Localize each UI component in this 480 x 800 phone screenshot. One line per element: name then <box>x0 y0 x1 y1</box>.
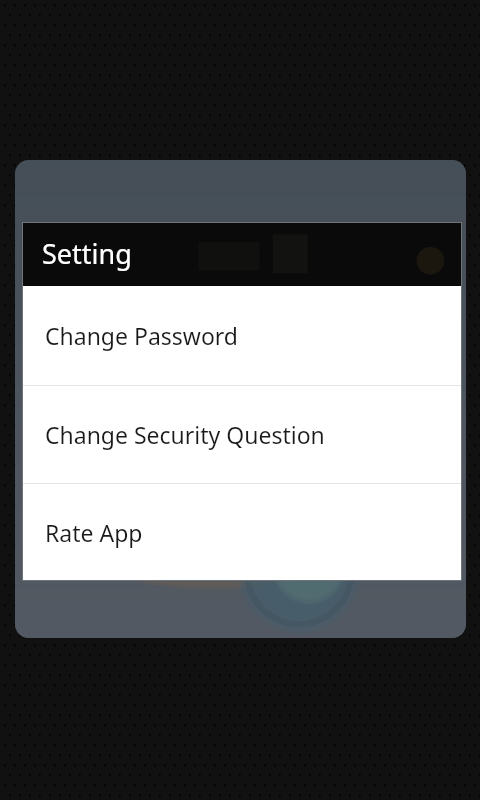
staticText: Setting <box>42 235 132 272</box>
staticText: Change Security Question <box>45 419 325 450</box>
button[interactable]: Change Security Question <box>23 386 461 483</box>
staticText: Rate App <box>45 517 143 548</box>
staticText: Change Password <box>45 320 238 351</box>
button[interactable]: Change Password <box>23 286 461 385</box>
button[interactable]: Rate App <box>23 484 461 580</box>
